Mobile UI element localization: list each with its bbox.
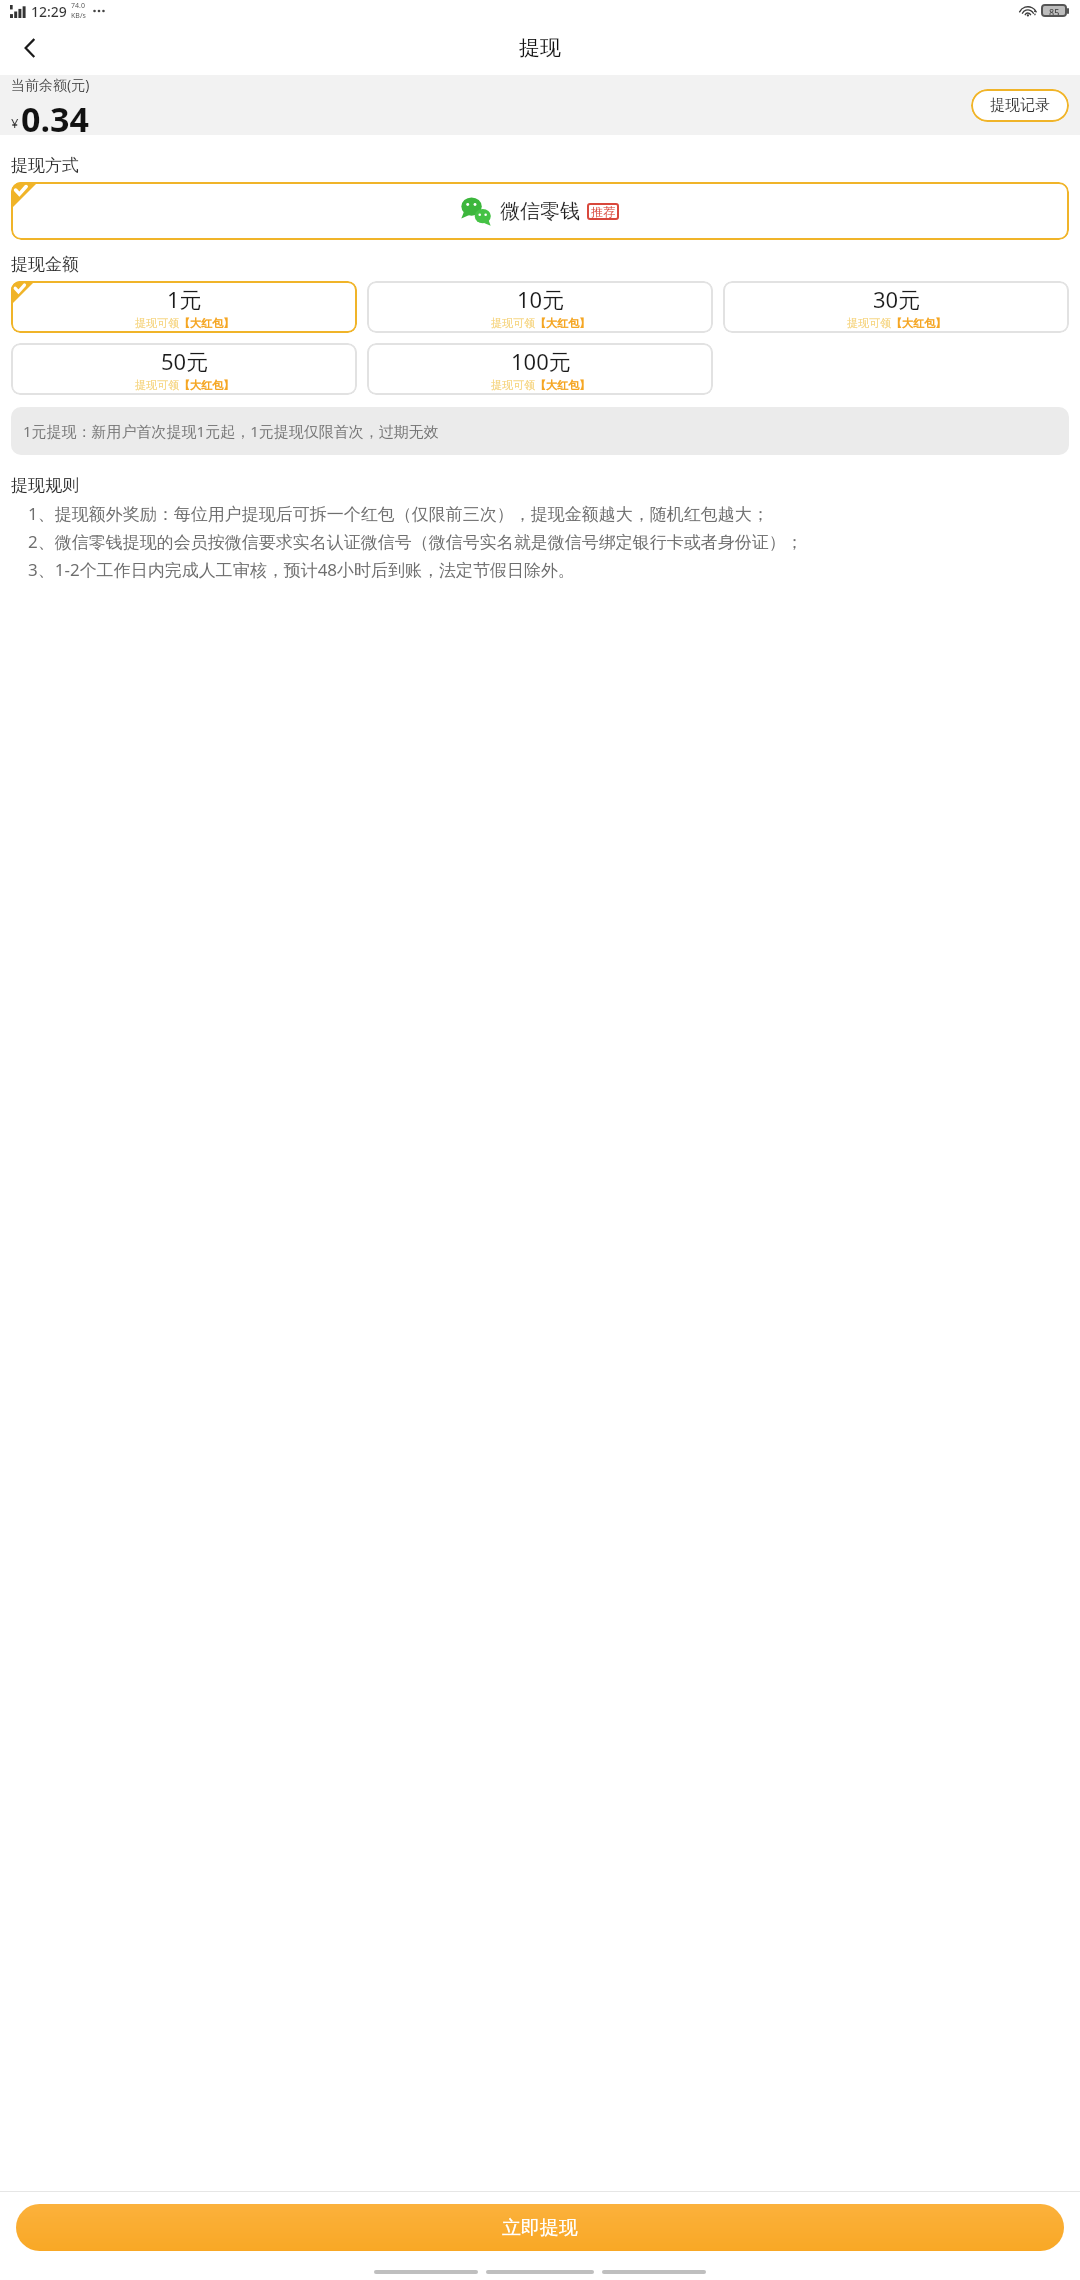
staticText: 1元提现：新用户首次提现1元起，1元提现仅限首次，过期无效 — [23, 421, 439, 441]
staticText: 0.34 — [21, 96, 89, 135]
staticText: 提现可领 — [135, 378, 179, 392]
staticText: 提现方式 — [11, 155, 79, 176]
button[interactable]: Back — [8, 26, 52, 70]
staticText: 提现可领 — [491, 378, 535, 392]
staticText: 85 — [1049, 6, 1060, 15]
staticText: 【大红包】 — [891, 316, 946, 330]
staticText: 提现规则 — [11, 475, 79, 496]
staticText: 【大红包】 — [179, 316, 234, 330]
staticText: 提现记录 — [990, 96, 1050, 115]
staticText: 提现 — [519, 35, 561, 61]
button[interactable]: 1元 — [11, 281, 357, 333]
staticText: 当前余额(元) — [11, 75, 90, 94]
button[interactable]: 50元 — [11, 343, 357, 395]
button[interactable]: 100元 — [367, 343, 713, 395]
staticText: 【大红包】 — [179, 378, 234, 392]
staticText: 提现可领 — [491, 316, 535, 330]
staticText: 提现金额 — [11, 254, 79, 275]
staticText: 推荐 — [591, 204, 615, 219]
staticText: KB/s — [71, 11, 86, 21]
staticText: 100元 — [511, 346, 571, 376]
staticText: 1、提现额外奖励：每位用户提现后可拆一个红包（仅限前三次），提现金额越大，随机红… — [11, 502, 803, 581]
staticText: 10元 — [517, 284, 565, 314]
staticText: 【大红包】 — [535, 378, 590, 392]
button[interactable]: 30元 — [723, 281, 1069, 333]
staticText: 提现可领 — [135, 316, 179, 330]
staticText: 74.0 — [71, 1, 85, 11]
staticText: 1元 — [167, 284, 202, 314]
staticText: 【大红包】 — [535, 316, 590, 330]
staticText: 12:29 — [31, 2, 67, 21]
staticText: 30元 — [873, 284, 921, 314]
button[interactable]: 微信零钱 — [11, 182, 1069, 240]
button[interactable]: 提现记录 — [971, 89, 1069, 122]
button[interactable]: 10元 — [367, 281, 713, 333]
staticText: 立即提现 — [502, 2216, 578, 2240]
staticText: 50元 — [161, 346, 209, 376]
staticText: 微信零钱 — [500, 199, 580, 224]
staticText: 提现可领 — [847, 316, 891, 330]
staticText: ¥ — [11, 114, 19, 132]
button[interactable]: 立即提现 — [16, 2204, 1064, 2251]
